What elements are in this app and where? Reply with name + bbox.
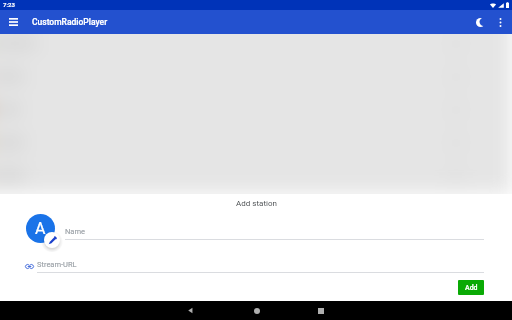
staticText: Name (65, 227, 85, 236)
staticText: Stream-URL (37, 260, 77, 269)
button[interactable]: Edit station image (44, 232, 60, 248)
button[interactable]: Recent apps (311, 301, 330, 320)
button[interactable]: Home (247, 301, 266, 320)
button[interactable]: Stream-URL (37, 260, 484, 273)
button[interactable]: Back (181, 301, 200, 320)
staticText: Add station (236, 199, 277, 208)
button[interactable]: Open navigation drawer (1, 10, 25, 34)
button[interactable]: Name (65, 227, 484, 240)
button[interactable]: Add (458, 280, 484, 295)
staticText: A (35, 219, 46, 238)
staticText: 7:23 (3, 1, 15, 8)
button[interactable]: Toggle dark mode (469, 11, 491, 33)
button[interactable]: Station image (26, 214, 55, 243)
button[interactable]: More options (491, 13, 509, 31)
staticText: Add (465, 284, 478, 292)
staticText: CustomRadioPlayer (32, 17, 108, 27)
